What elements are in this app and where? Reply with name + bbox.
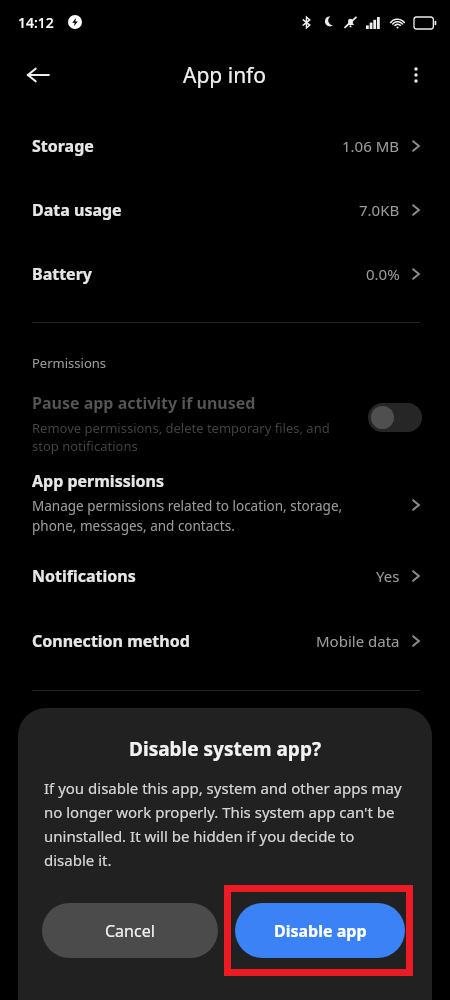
staticText: Mobile data (316, 631, 400, 651)
staticText: 0.0% (366, 264, 400, 284)
staticText: Battery (32, 263, 92, 285)
staticText: 1.06 MB (342, 136, 400, 156)
staticText: App permissions (32, 470, 164, 492)
button[interactable]: Disable app (235, 903, 405, 958)
staticText: Disable system app? (18, 736, 432, 762)
button[interactable]: Notifications (0, 548, 450, 604)
button[interactable]: Connection method (0, 613, 450, 669)
staticText: 7.0KB (359, 200, 400, 220)
staticText: Pause app activity if unused (32, 392, 256, 414)
staticText: Data usage (32, 199, 122, 221)
staticText: Yes (376, 566, 400, 586)
staticText: Permissions (32, 354, 107, 372)
staticText: Notifications (32, 565, 136, 587)
button[interactable]: Pause app activity if unused (0, 386, 450, 460)
staticText: Cancel (105, 920, 155, 942)
button[interactable]: More options (394, 53, 438, 97)
button[interactable]: Battery (0, 246, 450, 302)
button[interactable]: Cancel (42, 903, 218, 958)
staticText: If you disable this app, system and othe… (44, 778, 406, 870)
staticText: 14:12 (18, 13, 54, 32)
staticText: Remove permissions, delete temporary fil… (32, 419, 332, 455)
staticText: Storage (32, 135, 94, 157)
button[interactable]: Data usage (0, 182, 450, 238)
button[interactable]: Storage (0, 118, 450, 174)
staticText: Connection method (32, 630, 190, 652)
staticText: Manage permissions related to location, … (32, 497, 384, 535)
button[interactable]: Back (14, 51, 62, 99)
staticText: Disable app (274, 920, 367, 942)
button[interactable]: Pause app activity toggle (368, 403, 422, 432)
staticText: App info (183, 61, 267, 90)
button[interactable]: App permissions (0, 464, 450, 546)
